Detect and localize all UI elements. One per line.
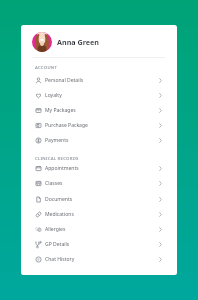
button[interactable]: Allergies (21, 222, 177, 237)
staticText: My Packages (45, 107, 76, 114)
staticText: Loyalty (45, 92, 62, 99)
button[interactable]: Purchase Package (21, 118, 177, 133)
staticText: GP Details (45, 241, 70, 248)
staticText: Documents (45, 196, 73, 203)
staticText: ACCOUNT (35, 64, 58, 70)
button[interactable]: Medications (21, 207, 177, 222)
button[interactable]: Payments (21, 133, 177, 148)
staticText: Allergies (45, 226, 66, 233)
staticText: Chat History (45, 256, 75, 263)
staticText: Personal Details (45, 77, 84, 84)
staticText: Medications (45, 211, 74, 218)
staticText: Classes (45, 180, 63, 187)
button[interactable]: Appointments (21, 161, 177, 176)
button[interactable]: Classes (21, 176, 177, 191)
button[interactable]: My Packages (21, 103, 177, 118)
staticText: Anna Green (57, 37, 100, 47)
button[interactable]: GP Details (21, 237, 177, 252)
staticText: CLINICAL RECORDS (35, 155, 79, 161)
staticText: Purchase Package (45, 122, 88, 129)
button[interactable]: Personal Details (21, 73, 177, 88)
staticText: Appointments (45, 165, 79, 172)
staticText: Payments (45, 137, 69, 144)
button[interactable]: Loyalty (21, 88, 177, 103)
button[interactable]: Chat History (21, 252, 177, 267)
button[interactable]: Anna Green (32, 30, 165, 54)
button[interactable]: Documents (21, 192, 177, 207)
